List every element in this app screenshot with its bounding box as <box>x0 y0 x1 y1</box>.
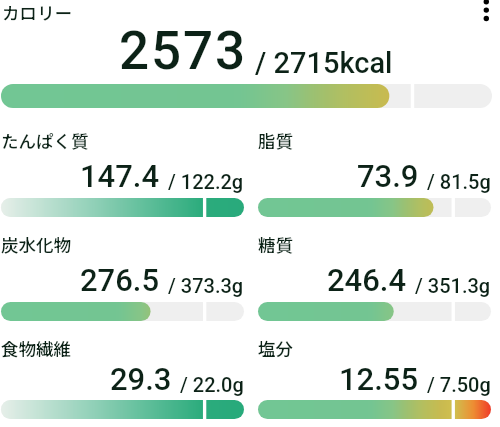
staticText: 糖質 <box>258 232 293 257</box>
staticText: / 7.50g <box>427 373 491 396</box>
staticText: 脂質 <box>258 128 293 153</box>
staticText: / 122.2g <box>168 170 244 193</box>
staticText: / 351.3g <box>415 274 491 297</box>
staticText: 2573 <box>119 20 248 82</box>
staticText: 食物繊維 <box>1 336 71 361</box>
staticText: 29.3 <box>110 361 172 397</box>
button[interactable]: More options <box>474 0 500 16</box>
staticText: / 81.5g <box>427 170 491 193</box>
staticText: 246.4 <box>327 262 407 298</box>
staticText: カロリー <box>2 0 72 25</box>
staticText: 炭水化物 <box>1 232 71 257</box>
staticText: 73.9 <box>357 158 419 194</box>
staticText: 147.4 <box>80 158 160 194</box>
staticText: 12.55 <box>339 361 419 397</box>
staticText: / 22.0g <box>180 373 244 396</box>
staticText: 276.5 <box>80 262 160 298</box>
staticText: / 2715kcal <box>255 46 393 80</box>
staticText: たんぱく質 <box>1 128 89 153</box>
staticText: 塩分 <box>258 336 293 361</box>
staticText: / 373.3g <box>168 274 244 297</box>
